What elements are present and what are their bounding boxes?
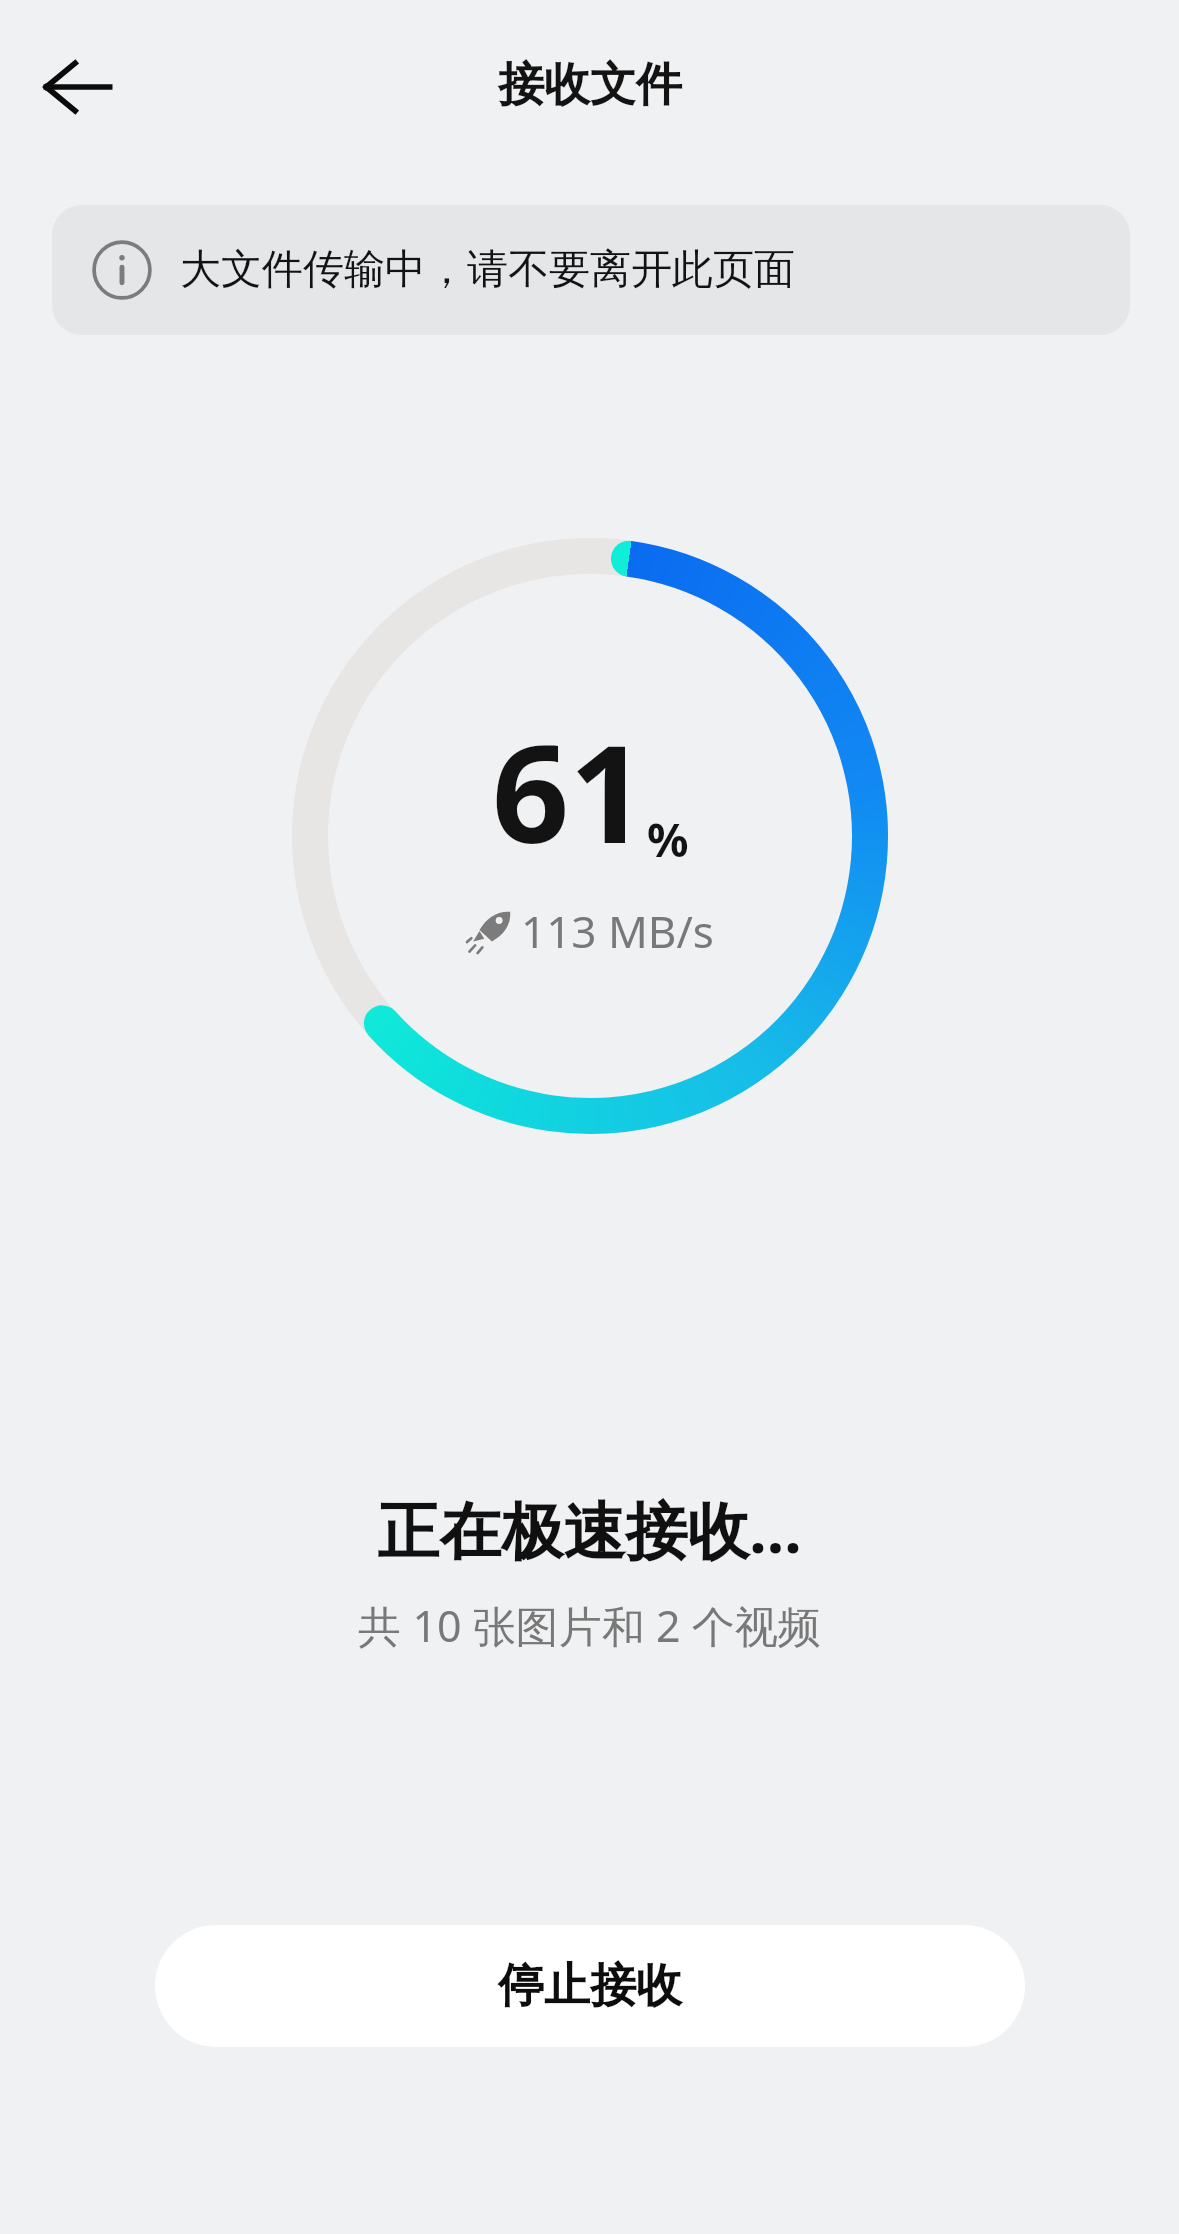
staticText: 大文件传输中，请不要离开此页面 <box>180 244 795 296</box>
staticText: 正在极速接收... <box>377 1487 802 1572</box>
staticText: 113 MB/s <box>521 901 714 961</box>
staticText: % <box>647 808 689 871</box>
staticText: 61 <box>492 699 647 883</box>
staticText: 共 10 张图片和 2 个视频 <box>358 1596 821 1655</box>
staticText: 停止接收 <box>498 1957 682 2015</box>
button[interactable]: Back <box>24 33 132 141</box>
button[interactable]: 大文件传输中，请不要离开此页面 <box>52 205 1130 335</box>
staticText: 接收文件 <box>498 56 682 114</box>
button[interactable]: 停止接收 <box>155 1925 1025 2047</box>
